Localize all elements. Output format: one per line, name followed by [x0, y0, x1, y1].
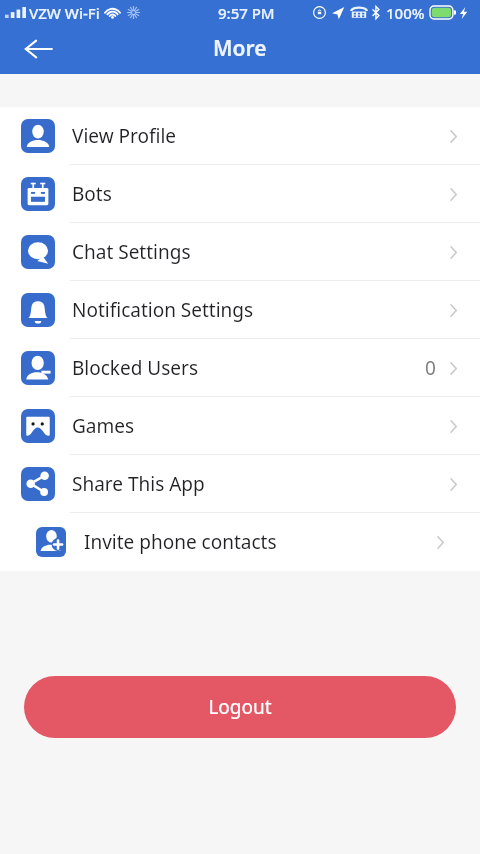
- button[interactable]: Bots: [0, 165, 480, 223]
- staticText: Invite phone contacts: [84, 529, 277, 555]
- button[interactable]: Logout: [24, 676, 456, 738]
- staticText: Blocked Users: [72, 355, 199, 381]
- button[interactable]: Notification Settings: [0, 281, 480, 339]
- button[interactable]: Share This App: [0, 455, 480, 513]
- staticText: View Profile: [72, 123, 177, 149]
- staticText: Bots: [72, 181, 112, 207]
- staticText: Chat Settings: [72, 239, 191, 265]
- staticText: Share This App: [72, 471, 205, 497]
- staticText: More: [213, 34, 267, 63]
- staticText: 0: [425, 355, 436, 381]
- button[interactable]: View Profile: [0, 107, 480, 165]
- staticText: Games: [72, 413, 135, 439]
- staticText: VZW Wi-Fi: [29, 3, 100, 23]
- button[interactable]: Chat Settings: [0, 223, 480, 281]
- button[interactable]: Invite phone contacts: [0, 513, 480, 571]
- staticText: 9:57 PM: [218, 3, 275, 23]
- button[interactable]: Games: [0, 397, 480, 455]
- staticText: 100%: [386, 3, 425, 23]
- staticText: Notification Settings: [72, 297, 254, 323]
- staticText: Logout: [208, 694, 272, 720]
- button[interactable]: Blocked Users: [0, 339, 480, 397]
- button[interactable]: Back: [15, 26, 61, 72]
